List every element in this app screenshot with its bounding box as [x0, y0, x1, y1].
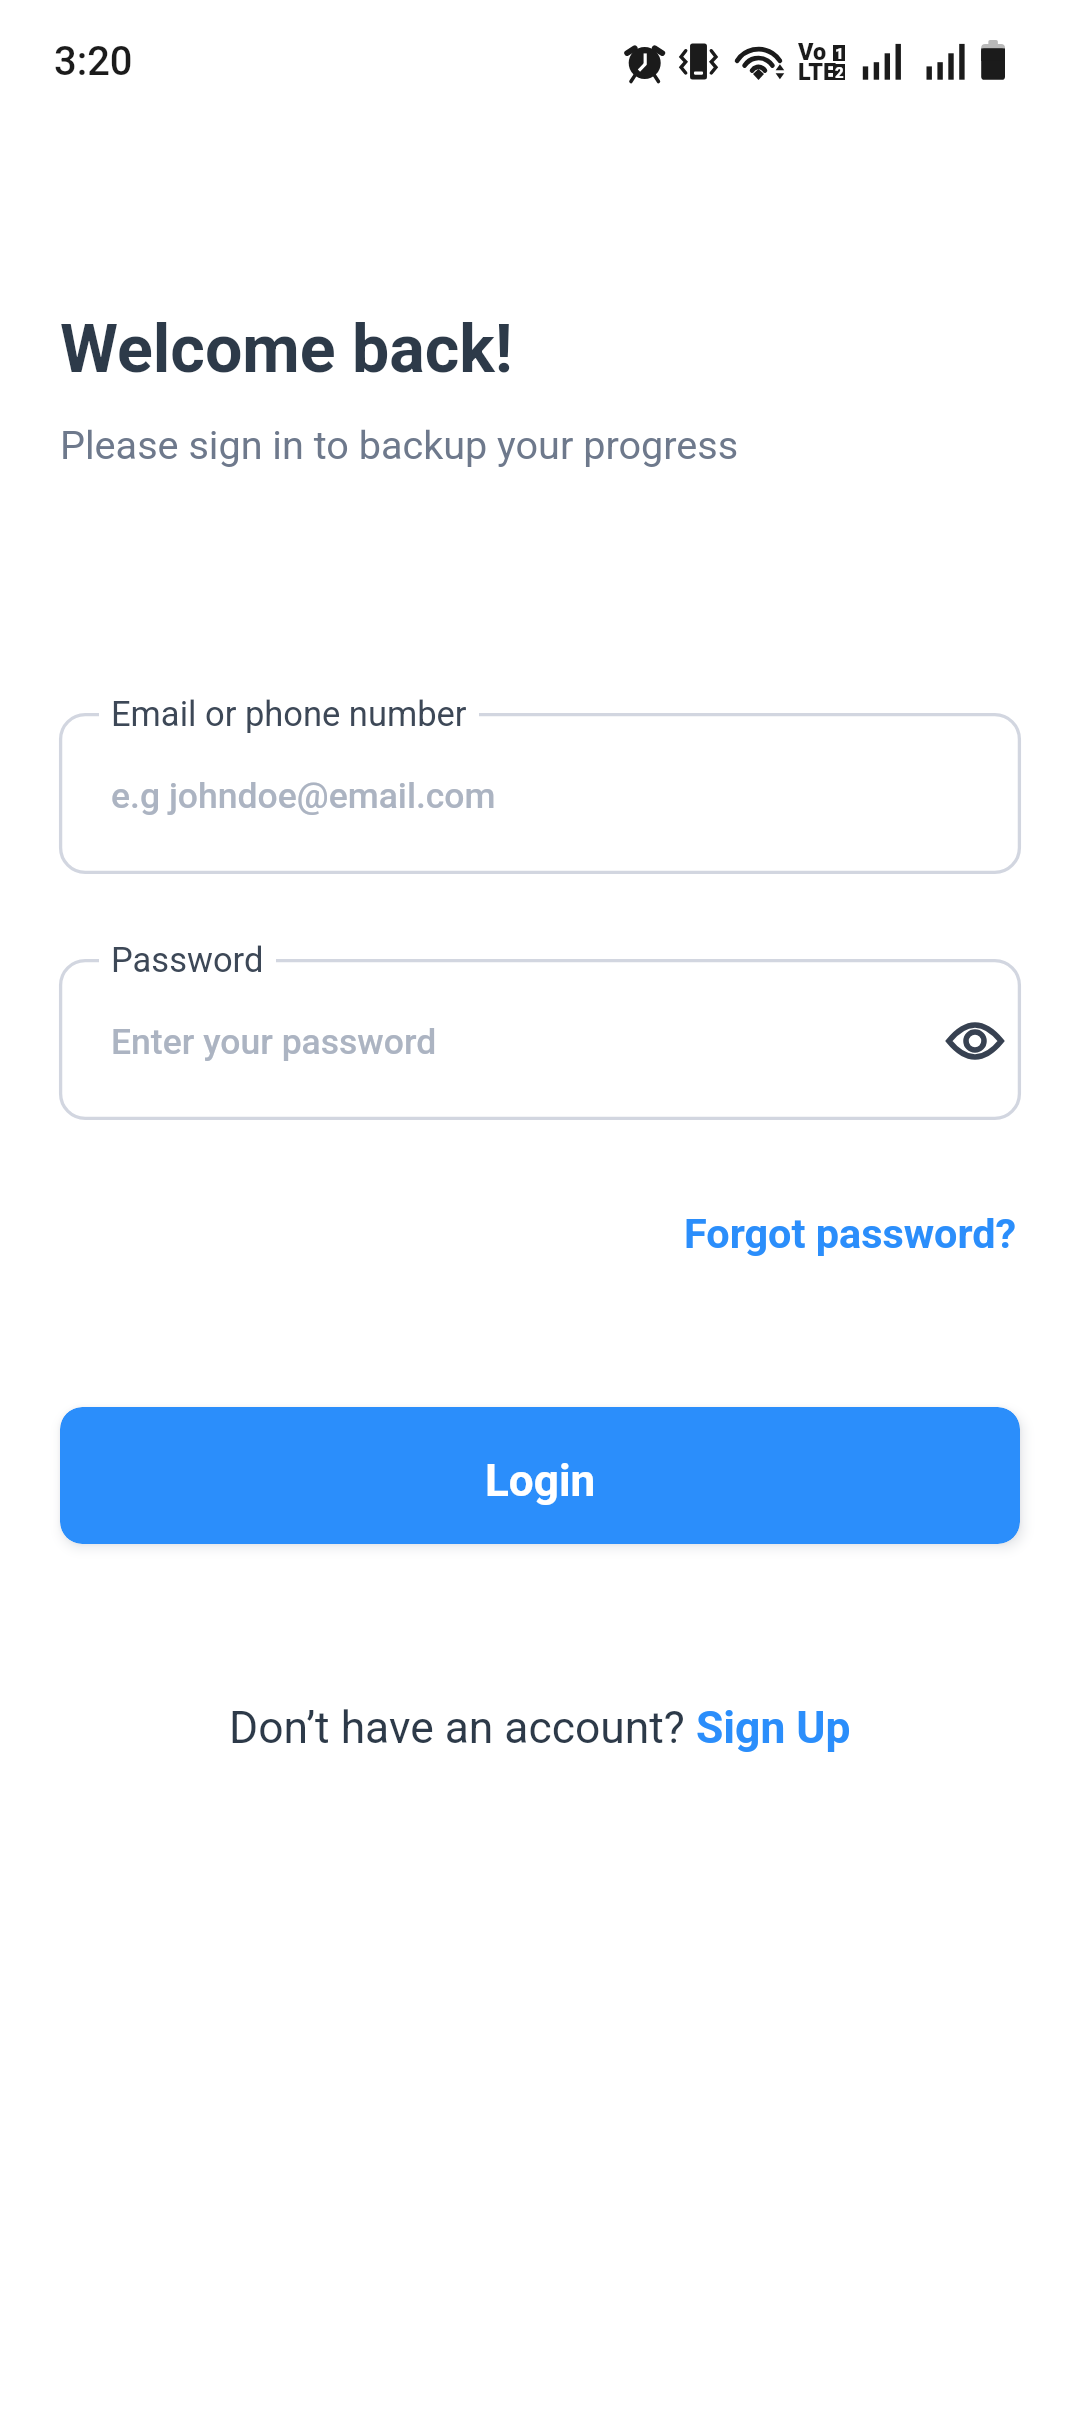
staticText: LTE	[798, 58, 837, 85]
staticText: e.g johndoe@email.com	[111, 775, 496, 817]
staticText: Vo	[798, 38, 827, 65]
staticText: 3:20	[54, 38, 133, 85]
staticText: Forgot password?	[684, 1210, 1017, 1259]
button[interactable]: Show password	[927, 993, 1023, 1089]
staticText: Password	[111, 940, 264, 980]
staticText: Sign Up	[696, 1702, 851, 1754]
button[interactable]: Sign Up	[696, 1702, 851, 1754]
staticText: Login	[485, 1455, 596, 1507]
staticText: Please sign in to backup your progress	[60, 422, 739, 468]
staticText: 2	[835, 64, 844, 80]
staticText: Welcome back!	[60, 310, 513, 388]
button[interactable]	[60, 960, 1020, 1119]
staticText: Don’t have an account?	[229, 1702, 696, 1754]
staticText: Email or phone number	[111, 694, 467, 734]
staticText: 1	[835, 45, 844, 61]
button[interactable]: Login	[60, 1407, 1020, 1544]
button[interactable]: Forgot password?	[681, 1192, 1020, 1277]
staticText: Enter your password	[111, 1021, 437, 1063]
button[interactable]	[60, 714, 1020, 873]
